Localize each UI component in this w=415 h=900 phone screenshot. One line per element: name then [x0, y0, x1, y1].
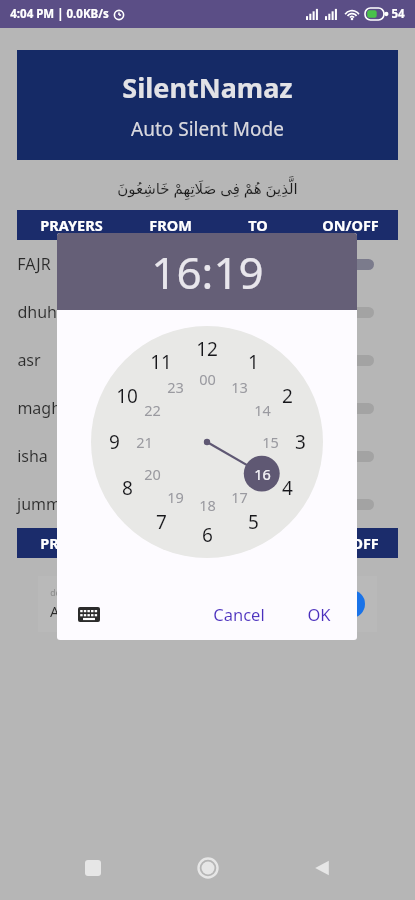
staticText: TO: [248, 215, 268, 235]
staticText: 10: [116, 383, 138, 409]
staticText: 1: [248, 349, 259, 375]
staticText: 11: [150, 349, 172, 375]
staticText: PRAYERS: [40, 215, 103, 235]
staticText: 9: [109, 429, 120, 455]
staticText: 00: [199, 369, 216, 389]
staticText: Cancel: [213, 603, 265, 625]
staticText: 14: [254, 400, 271, 420]
staticText: jumma: [17, 493, 70, 515]
button[interactable]: Disabled: [326, 395, 374, 421]
staticText: 6: [202, 522, 213, 548]
staticText: TO: [248, 533, 268, 553]
staticText: ON/OFF: [322, 533, 379, 553]
button[interactable]: OK: [295, 595, 343, 633]
staticText: 17: [231, 487, 248, 507]
button[interactable]: Home: [186, 846, 230, 890]
staticText: AdMob Adaptive Banner: [50, 601, 216, 621]
staticText: FROM: [149, 215, 192, 235]
staticText: 23: [167, 377, 184, 397]
staticText: 16:19: [151, 242, 264, 302]
staticText: 2: [282, 383, 293, 409]
button[interactable]: PRAYERS: [17, 528, 398, 558]
staticText: 19: [167, 487, 184, 507]
button[interactable]: Recents: [71, 846, 115, 890]
staticText: FAJR: [17, 253, 51, 275]
staticText: maghrib: [17, 397, 82, 419]
button[interactable]: Disabled: [326, 443, 374, 469]
staticText: 54: [391, 6, 405, 22]
button[interactable]: Back: [300, 846, 344, 890]
staticText: 5: [248, 509, 259, 535]
button[interactable]: SilentNamaz: [17, 50, 398, 160]
staticText: Auto Silent Mode: [131, 116, 284, 142]
button[interactable]: Enabled: [326, 251, 374, 277]
staticText: PRAYERS: [40, 533, 103, 553]
button[interactable]: Disabled: [326, 299, 374, 325]
staticText: 3: [295, 429, 306, 455]
staticText: 13: [231, 377, 248, 397]
button[interactable]: OPEN ›: [306, 596, 349, 612]
button[interactable]: Disabled: [326, 491, 374, 517]
staticText: 16: [254, 464, 271, 484]
staticText: 4:04 PM | 0.0KB/s: [10, 6, 109, 22]
staticText: developers.google.com: [50, 587, 144, 599]
button[interactable]: FAJR: [17, 240, 398, 288]
staticText: ON/OFF: [322, 215, 379, 235]
staticText: OK: [307, 603, 331, 625]
button[interactable]: PRAYERS: [17, 210, 398, 240]
staticText: SilentNamaz: [122, 69, 293, 106]
button[interactable]: dhuhr: [17, 288, 398, 336]
staticText: 20: [144, 464, 161, 484]
staticText: 21: [136, 432, 153, 452]
staticText: dhuhr: [17, 301, 64, 323]
staticText: 4: [282, 475, 293, 501]
staticText: الَّذِينَ هُمْ فِى صَلَاتِهِمْ خَاشِعُون…: [117, 178, 298, 198]
staticText: OPEN ›: [306, 596, 349, 612]
button[interactable]: developers.google.com: [38, 576, 377, 632]
button[interactable]: asr: [17, 336, 398, 384]
staticText: 15: [262, 432, 279, 452]
staticText: 18: [199, 495, 216, 515]
button[interactable]: jumma: [17, 480, 398, 528]
staticText: 16: [254, 464, 271, 484]
staticText: 12: [196, 336, 218, 362]
button[interactable]: Disabled: [326, 347, 374, 373]
button[interactable]: Switch to text input: [71, 596, 107, 632]
staticText: 22: [144, 400, 161, 420]
staticText: asr: [17, 349, 41, 371]
button[interactable]: Cancel: [201, 595, 277, 633]
button[interactable]: maghrib: [17, 384, 398, 432]
button[interactable]: isha: [17, 432, 398, 480]
staticText: isha: [17, 445, 48, 467]
staticText: FROM: [149, 533, 192, 553]
staticText: 8: [122, 475, 133, 501]
staticText: 7: [156, 509, 167, 535]
